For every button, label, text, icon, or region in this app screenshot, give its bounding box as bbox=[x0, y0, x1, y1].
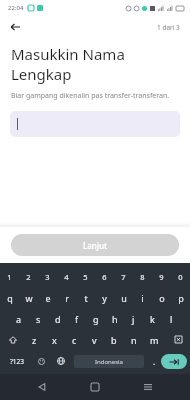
button[interactable]: Back bbox=[6, 18, 24, 36]
button[interactable]: p bbox=[171, 287, 190, 308]
button[interactable]: r bbox=[57, 287, 76, 308]
button[interactable]: c bbox=[64, 329, 84, 350]
staticText: 2 bbox=[26, 272, 31, 282]
staticText: a bbox=[16, 313, 22, 325]
staticText: m bbox=[150, 334, 159, 346]
staticText: 0 bbox=[178, 272, 183, 282]
staticText: z bbox=[32, 334, 37, 346]
button[interactable]: j bbox=[124, 308, 143, 329]
button[interactable]: 0 bbox=[171, 266, 190, 287]
staticText: y bbox=[102, 292, 107, 304]
staticText: q bbox=[7, 292, 13, 304]
button[interactable]: 3 bbox=[38, 266, 57, 287]
staticText: u bbox=[121, 292, 127, 304]
button[interactable] bbox=[10, 111, 180, 137]
staticText: 5 bbox=[83, 272, 88, 282]
staticText: g bbox=[93, 313, 99, 325]
button[interactable]: 2 bbox=[19, 266, 38, 287]
staticText: b bbox=[111, 334, 117, 346]
button[interactable]: l bbox=[162, 308, 181, 329]
staticText: o bbox=[159, 292, 165, 304]
button[interactable]: q bbox=[0, 287, 19, 308]
button[interactable]: Change language bbox=[51, 350, 71, 372]
button[interactable]: k bbox=[143, 308, 162, 329]
staticText: Lanjut bbox=[83, 240, 108, 251]
button[interactable]: y bbox=[95, 287, 114, 308]
button[interactable]: a bbox=[9, 308, 29, 329]
button[interactable]: e bbox=[38, 287, 57, 308]
button[interactable]: h bbox=[105, 308, 124, 329]
button[interactable]: m bbox=[144, 329, 164, 350]
button[interactable]: Back bbox=[31, 376, 53, 398]
staticText: h bbox=[112, 313, 118, 325]
button[interactable]: o bbox=[152, 287, 171, 308]
button[interactable]: Recents bbox=[137, 376, 159, 398]
staticText: c bbox=[72, 334, 77, 346]
staticText: n bbox=[131, 334, 137, 346]
staticText: t bbox=[84, 292, 88, 304]
button[interactable]: f bbox=[67, 308, 86, 329]
staticText: d bbox=[55, 313, 61, 325]
button[interactable]: Emoji bbox=[31, 350, 51, 372]
staticText: 8 bbox=[140, 272, 145, 282]
staticText: s bbox=[36, 313, 41, 325]
staticText: ?123 bbox=[10, 357, 24, 366]
staticText: x bbox=[52, 334, 57, 346]
staticText: 7 bbox=[121, 272, 126, 282]
staticText: f bbox=[75, 313, 79, 325]
button[interactable]: z bbox=[25, 329, 44, 350]
staticText: i bbox=[141, 292, 144, 304]
button[interactable]: Enter bbox=[161, 354, 187, 369]
button[interactable]: 4 bbox=[57, 266, 76, 287]
button[interactable]: x bbox=[44, 329, 64, 350]
staticText: l bbox=[170, 313, 173, 325]
staticText: Masukkin Nama Lengkap bbox=[11, 44, 179, 84]
staticText: p bbox=[178, 292, 184, 304]
staticText: r bbox=[65, 292, 69, 304]
button[interactable]: Shift bbox=[0, 329, 25, 350]
button[interactable]: 1 bbox=[0, 266, 19, 287]
button[interactable]: Home bbox=[84, 376, 106, 398]
staticText: Indonesia bbox=[95, 358, 123, 366]
button[interactable]: 7 bbox=[114, 266, 133, 287]
button[interactable]: Lanjut bbox=[11, 234, 179, 256]
button[interactable]: s bbox=[29, 308, 48, 329]
button[interactable]: d bbox=[48, 308, 67, 329]
button[interactable]: Backspace bbox=[164, 329, 190, 350]
button[interactable]: Indonesia bbox=[74, 355, 144, 368]
staticText: w bbox=[25, 292, 33, 304]
staticText: Biar gampang dikenalin pas transfer-tran… bbox=[11, 91, 170, 101]
staticText: . bbox=[153, 356, 156, 367]
button[interactable]: v bbox=[84, 329, 104, 350]
button[interactable]: 5 bbox=[76, 266, 95, 287]
staticText: j bbox=[132, 313, 135, 325]
button[interactable]: i bbox=[133, 287, 152, 308]
button[interactable]: t bbox=[76, 287, 95, 308]
button[interactable]: b bbox=[104, 329, 124, 350]
button[interactable]: ?123 bbox=[3, 350, 31, 372]
staticText: 6 bbox=[102, 272, 107, 282]
button[interactable]: 9 bbox=[152, 266, 171, 287]
button[interactable]: g bbox=[86, 308, 105, 329]
button[interactable]: w bbox=[19, 287, 38, 308]
staticText: v bbox=[92, 334, 97, 346]
button[interactable]: n bbox=[124, 329, 144, 350]
button[interactable]: 6 bbox=[95, 266, 114, 287]
staticText: k bbox=[150, 313, 155, 325]
button[interactable]: 8 bbox=[133, 266, 152, 287]
button[interactable]: u bbox=[114, 287, 133, 308]
staticText: 3 bbox=[45, 272, 50, 282]
staticText: e bbox=[45, 292, 51, 304]
staticText: 22:04 bbox=[8, 4, 24, 12]
staticText: 1 bbox=[7, 272, 12, 282]
staticText: 1 dari 3 bbox=[157, 23, 180, 32]
staticText: 4 bbox=[64, 272, 69, 282]
button[interactable]: . bbox=[147, 350, 161, 372]
staticText: 9 bbox=[159, 272, 164, 282]
